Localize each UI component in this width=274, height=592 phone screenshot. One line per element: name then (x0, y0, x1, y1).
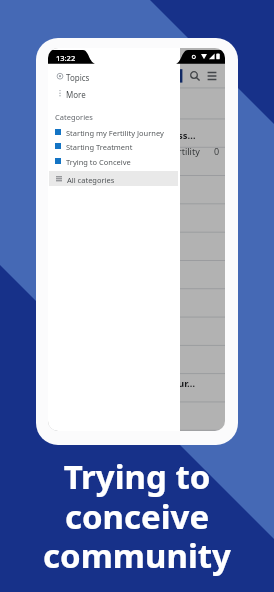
staticText: Trying to Conceive (66, 157, 131, 167)
staticText: All categories (67, 175, 115, 185)
button[interactable]: Topics (48, 68, 180, 84)
button[interactable]: More (48, 85, 180, 101)
staticText: 0 (214, 145, 220, 157)
staticText: ss… (178, 129, 196, 142)
button[interactable]: All categories (49, 171, 178, 186)
button[interactable]: Trying to Conceive (48, 154, 180, 169)
staticText: Starting Treatment (66, 142, 133, 152)
staticText: Topics (66, 72, 90, 83)
button[interactable]: Starting Treatment (48, 139, 180, 154)
staticText: rtility (178, 145, 200, 157)
staticText: More (66, 89, 86, 100)
staticText: Categories (55, 112, 93, 122)
staticText: Starting my Fertility Journey (66, 128, 164, 138)
button[interactable]: Starting my Fertility Journey (48, 125, 180, 140)
staticText: ur… (178, 377, 196, 390)
staticText: Trying to conceive community (0, 454, 274, 592)
staticText: 13:22 (56, 53, 76, 63)
button[interactable]: Search (184, 65, 204, 85)
button[interactable]: Open navigation menu (203, 65, 223, 85)
